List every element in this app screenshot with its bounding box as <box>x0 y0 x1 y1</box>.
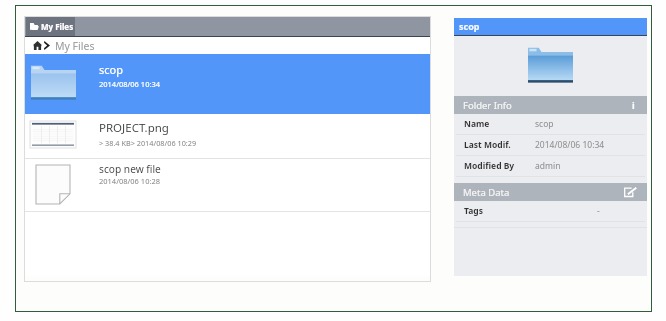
staticText: scop <box>99 62 123 77</box>
button[interactable]: Folder Info <box>454 96 647 114</box>
staticText: 2014/08/06 10:34 <box>535 139 605 151</box>
button[interactable]: scop <box>24 54 431 114</box>
staticText: scop <box>459 20 480 32</box>
staticText: My Files <box>55 39 95 53</box>
other: Edit <box>623 187 637 197</box>
staticText: > 38.4 KB> 2014/08/06 10:29 <box>99 138 197 148</box>
button[interactable]: Edit meta data <box>622 185 638 199</box>
staticText: i <box>632 99 635 111</box>
staticText: Tags <box>464 205 483 217</box>
staticText: - <box>597 205 600 217</box>
staticText: admin <box>535 160 561 172</box>
staticText: Modified By <box>464 160 515 172</box>
staticText: 2014/08/06 10:28 <box>99 176 161 186</box>
staticText: Name <box>464 118 490 130</box>
staticText: Meta Data <box>463 186 510 199</box>
staticText: My Files <box>41 21 74 32</box>
staticText: Last Modif. <box>464 139 511 151</box>
staticText: scop new file <box>99 162 161 176</box>
button[interactable]: Info <box>628 98 638 112</box>
button[interactable]: scop new file <box>24 159 431 211</box>
button[interactable]: My Files <box>55 37 95 54</box>
staticText: PROJECT.png <box>99 120 169 136</box>
staticText: Folder Info <box>463 99 512 112</box>
staticText: scop <box>535 118 554 130</box>
button[interactable]: Meta Data <box>454 183 647 201</box>
button[interactable]: Home <box>32 37 42 54</box>
button[interactable]: PROJECT.png <box>24 114 431 158</box>
button[interactable]: My Files <box>26 16 75 36</box>
staticText: 2014/08/06 10:34 <box>99 79 161 89</box>
